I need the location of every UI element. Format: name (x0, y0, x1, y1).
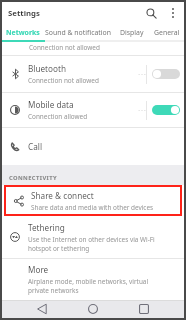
staticText: CONNECTIVITY (9, 174, 57, 182)
staticText: Mobile data (28, 99, 74, 110)
staticText: Connection allowed (28, 112, 88, 121)
button[interactable]: Search (140, 2, 162, 24)
button[interactable]: Bluetooth (2, 56, 184, 92)
button[interactable]: Sound & notification (43, 24, 113, 40)
staticText: Airplane mode, mobile networks, virtual … (28, 277, 149, 295)
button[interactable]: More (2, 259, 184, 300)
button[interactable]: More options (162, 2, 184, 24)
button[interactable]: General (150, 24, 184, 40)
staticText: Connection not allowed (29, 43, 100, 52)
button[interactable]: Display (113, 24, 150, 40)
button[interactable]: Share & connect (6, 187, 180, 214)
staticText: Call (28, 141, 42, 152)
staticText: Bluetooth (28, 63, 66, 74)
button[interactable]: Recent apps (133, 300, 155, 318)
button[interactable]: Home (82, 300, 104, 318)
staticText: Sound & notification (45, 28, 112, 37)
button[interactable]: Call (2, 128, 184, 165)
button[interactable]: Mobile data (2, 93, 184, 127)
staticText: Share & connect (31, 190, 94, 201)
staticText: Share data and media with other devices (31, 203, 154, 212)
staticText: Use the Internet on other devices via Wi… (28, 235, 155, 253)
staticText: Networks (6, 28, 40, 37)
staticText: More (28, 264, 49, 275)
staticText: Settings (8, 8, 40, 19)
button[interactable]: Back (31, 300, 53, 318)
button[interactable]: Bluetooth switch (147, 56, 184, 92)
staticText: Tethering (28, 222, 65, 233)
button[interactable]: Networks (2, 24, 43, 40)
staticText: General (154, 28, 180, 37)
staticText: Display (120, 28, 144, 37)
staticText: Connection not allowed (28, 76, 99, 85)
button[interactable]: Mobile data switch (147, 93, 184, 127)
button[interactable]: Tethering (2, 216, 184, 258)
